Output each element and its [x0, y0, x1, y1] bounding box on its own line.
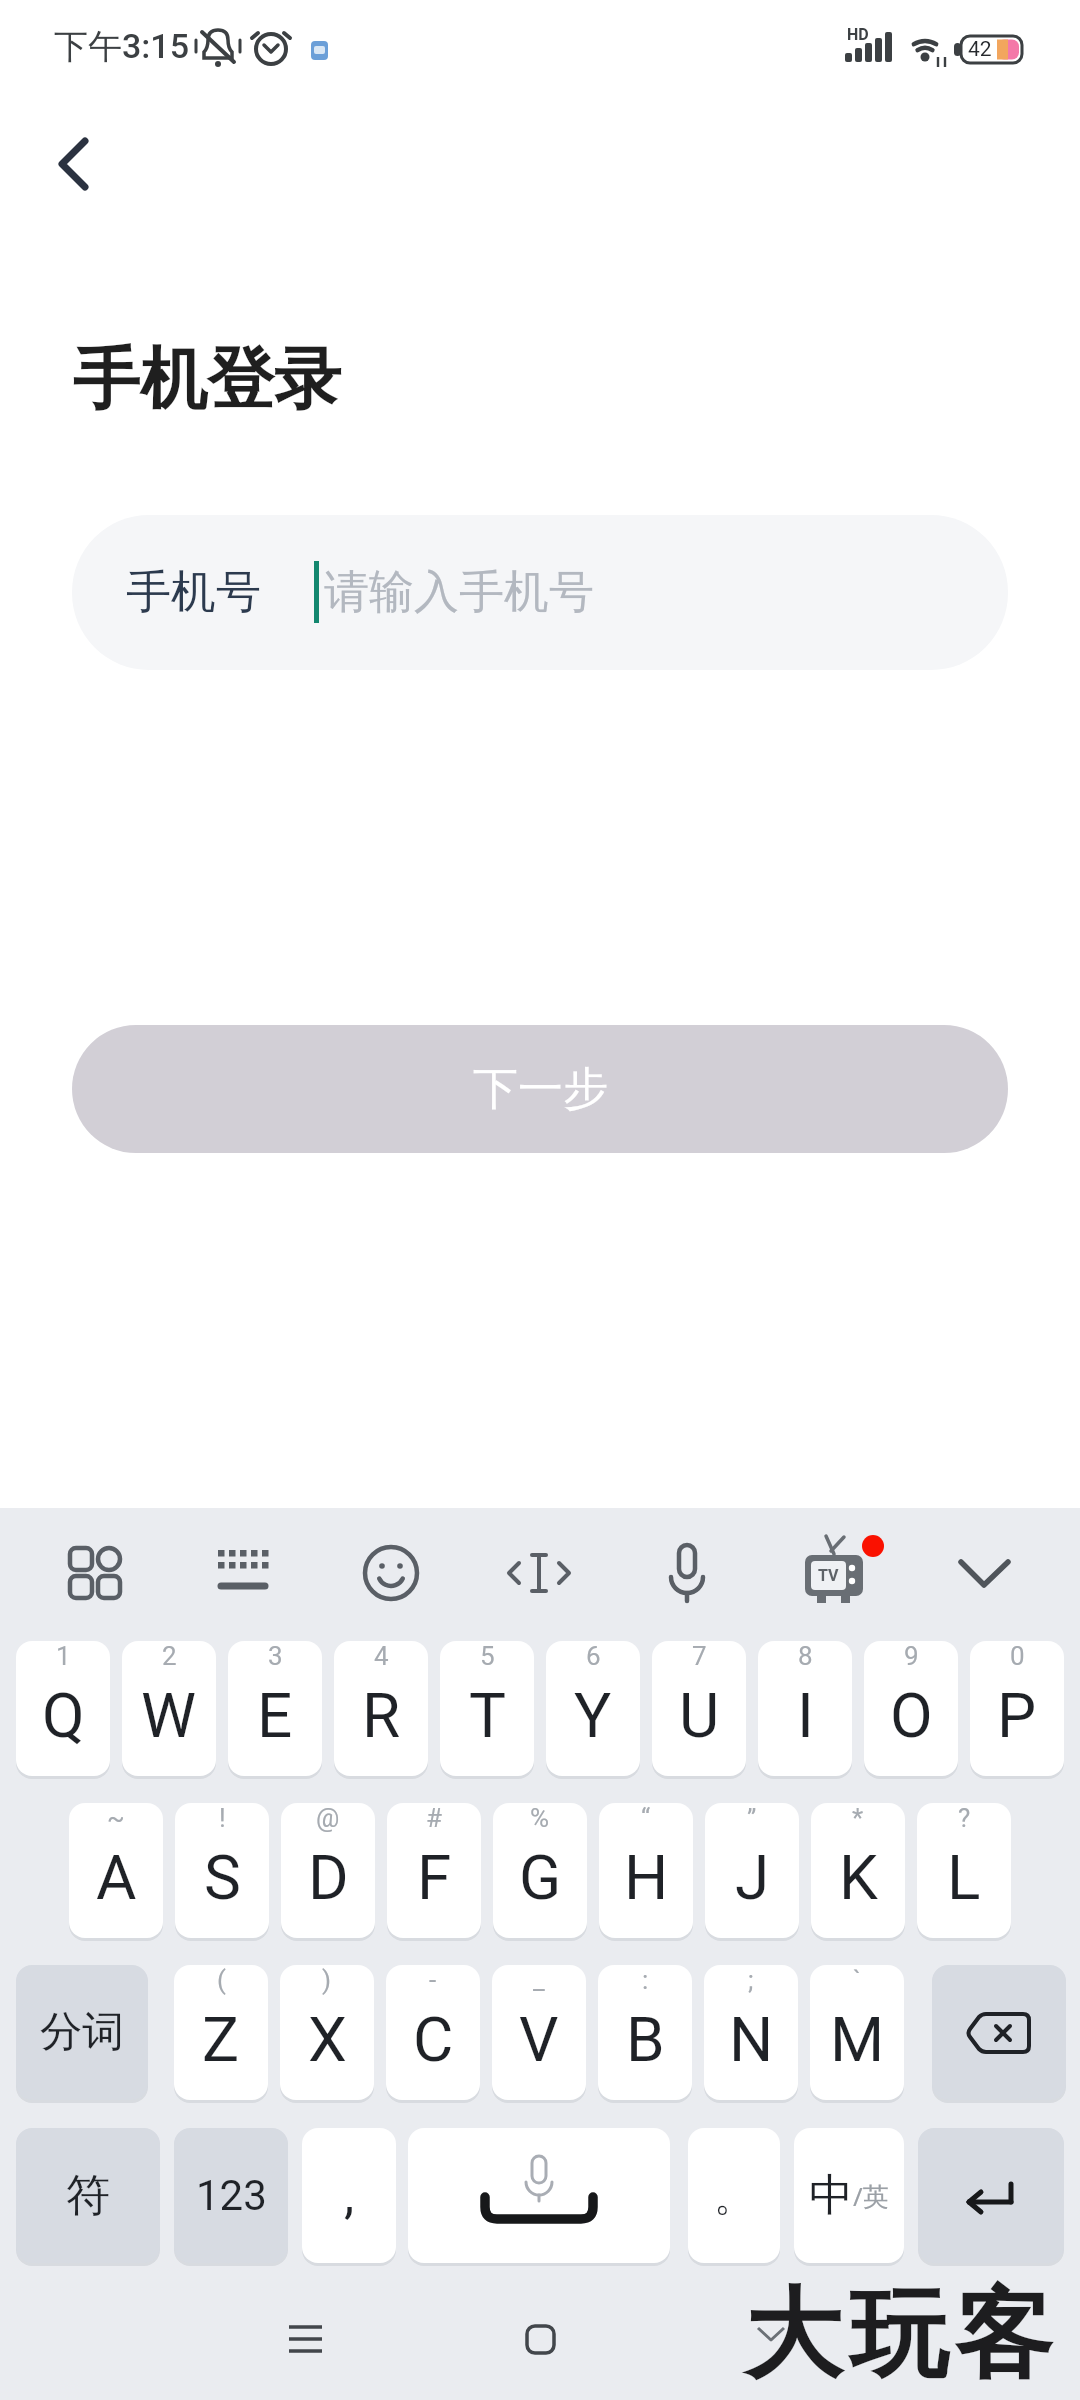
button[interactable]: ”: [705, 1803, 799, 1938]
staticText: 8: [798, 1641, 813, 1671]
staticText: ”: [747, 1803, 757, 1833]
staticText: B: [626, 2003, 665, 2076]
staticText: #: [426, 1803, 443, 1833]
button[interactable]: 下一步: [72, 1025, 1008, 1153]
staticText: /英: [853, 2178, 889, 2214]
staticText: TV: [818, 1566, 839, 1585]
button[interactable]: [198, 1528, 288, 1618]
button[interactable]: 7: [652, 1641, 746, 1776]
staticText: 123: [196, 2171, 267, 2220]
staticText: J: [735, 1841, 770, 1914]
staticText: 手机号: [126, 564, 261, 621]
button[interactable]: [790, 1528, 880, 1618]
button[interactable]: [731, 2310, 811, 2390]
button[interactable]: -: [386, 1965, 480, 2100]
button[interactable]: [918, 2128, 1064, 2263]
staticText: 大玩客: [741, 2274, 1056, 2397]
staticText: -: [429, 1965, 437, 1995]
staticText: 中: [809, 2168, 853, 2223]
button[interactable]: (: [174, 1965, 268, 2100]
button[interactable]: 8: [758, 1641, 852, 1776]
button[interactable]: ): [280, 1965, 374, 2100]
staticText: ): [322, 1965, 332, 1995]
staticText: M: [830, 2003, 885, 2076]
button[interactable]: [50, 1528, 140, 1618]
staticText: 42: [968, 37, 992, 62]
button[interactable]: 5: [440, 1641, 534, 1776]
button[interactable]: 中: [794, 2128, 904, 2263]
button[interactable]: ?: [917, 1803, 1011, 1938]
button[interactable]: :: [598, 1965, 692, 2100]
button[interactable]: [932, 1965, 1066, 2100]
staticText: O: [890, 1679, 933, 1752]
button[interactable]: 符: [16, 2128, 160, 2263]
staticText: 9: [904, 1641, 919, 1671]
button[interactable]: %: [493, 1803, 587, 1938]
staticText: F: [417, 1841, 452, 1914]
staticText: Z: [202, 2003, 240, 2076]
staticText: X: [308, 2003, 347, 2076]
staticText: 2: [162, 1641, 177, 1671]
staticText: E: [257, 1679, 293, 1752]
staticText: S: [204, 1841, 241, 1914]
staticText: !: [219, 1803, 226, 1833]
button[interactable]: @: [281, 1803, 375, 1938]
staticText: _: [533, 1965, 545, 1995]
button[interactable]: #: [387, 1803, 481, 1938]
button[interactable]: 分词: [16, 1965, 148, 2100]
staticText: *: [852, 1803, 864, 1833]
button[interactable]: 4: [334, 1641, 428, 1776]
button[interactable]: [265, 2310, 345, 2390]
staticText: N: [729, 2003, 774, 2076]
staticText: C: [413, 2003, 454, 2076]
button[interactable]: `: [810, 1965, 904, 2100]
staticText: 4: [374, 1641, 389, 1671]
staticText: 。: [714, 2171, 754, 2221]
button[interactable]: 1: [16, 1641, 110, 1776]
staticText: L: [947, 1841, 981, 1914]
staticText: HD: [847, 25, 869, 43]
staticText: %: [530, 1803, 550, 1833]
button[interactable]: *: [811, 1803, 905, 1938]
button[interactable]: [938, 1528, 1028, 1618]
button[interactable]: “: [599, 1803, 693, 1938]
staticText: ,: [344, 2165, 355, 2226]
staticText: 下午3:15: [54, 25, 189, 68]
staticText: `: [853, 1965, 862, 1995]
staticText: P: [997, 1679, 1037, 1752]
button[interactable]: _: [492, 1965, 586, 2100]
staticText: 5: [480, 1641, 495, 1671]
button[interactable]: ~: [69, 1803, 163, 1938]
staticText: 7: [692, 1641, 707, 1671]
staticText: @: [316, 1803, 340, 1833]
button[interactable]: 手机号: [72, 515, 1008, 670]
button[interactable]: ;: [704, 1965, 798, 2100]
staticText: K: [839, 1841, 878, 1914]
button[interactable]: 6: [546, 1641, 640, 1776]
button[interactable]: [642, 1528, 732, 1618]
staticText: 符: [66, 2168, 110, 2223]
button[interactable]: !: [175, 1803, 269, 1938]
staticText: ;: [748, 1965, 754, 1995]
button[interactable]: [408, 2128, 670, 2263]
staticText: I: [797, 1679, 814, 1752]
staticText: ~: [107, 1803, 125, 1833]
button[interactable]: ,: [302, 2128, 396, 2263]
button[interactable]: [40, 130, 110, 200]
button[interactable]: [500, 2310, 580, 2390]
staticText: ?: [958, 1803, 971, 1833]
button[interactable]: 3: [228, 1641, 322, 1776]
staticText: D: [308, 1841, 349, 1914]
button[interactable]: 0: [970, 1641, 1064, 1776]
button[interactable]: [346, 1528, 436, 1618]
staticText: G: [519, 1841, 562, 1914]
button[interactable]: 123: [174, 2128, 288, 2263]
button[interactable]: 2: [122, 1641, 216, 1776]
button[interactable]: 9: [864, 1641, 958, 1776]
staticText: H: [624, 1841, 669, 1914]
staticText: T: [469, 1679, 506, 1752]
button[interactable]: 。: [688, 2128, 780, 2263]
button[interactable]: [494, 1528, 584, 1618]
staticText: 3: [268, 1641, 283, 1671]
staticText: R: [362, 1679, 401, 1752]
